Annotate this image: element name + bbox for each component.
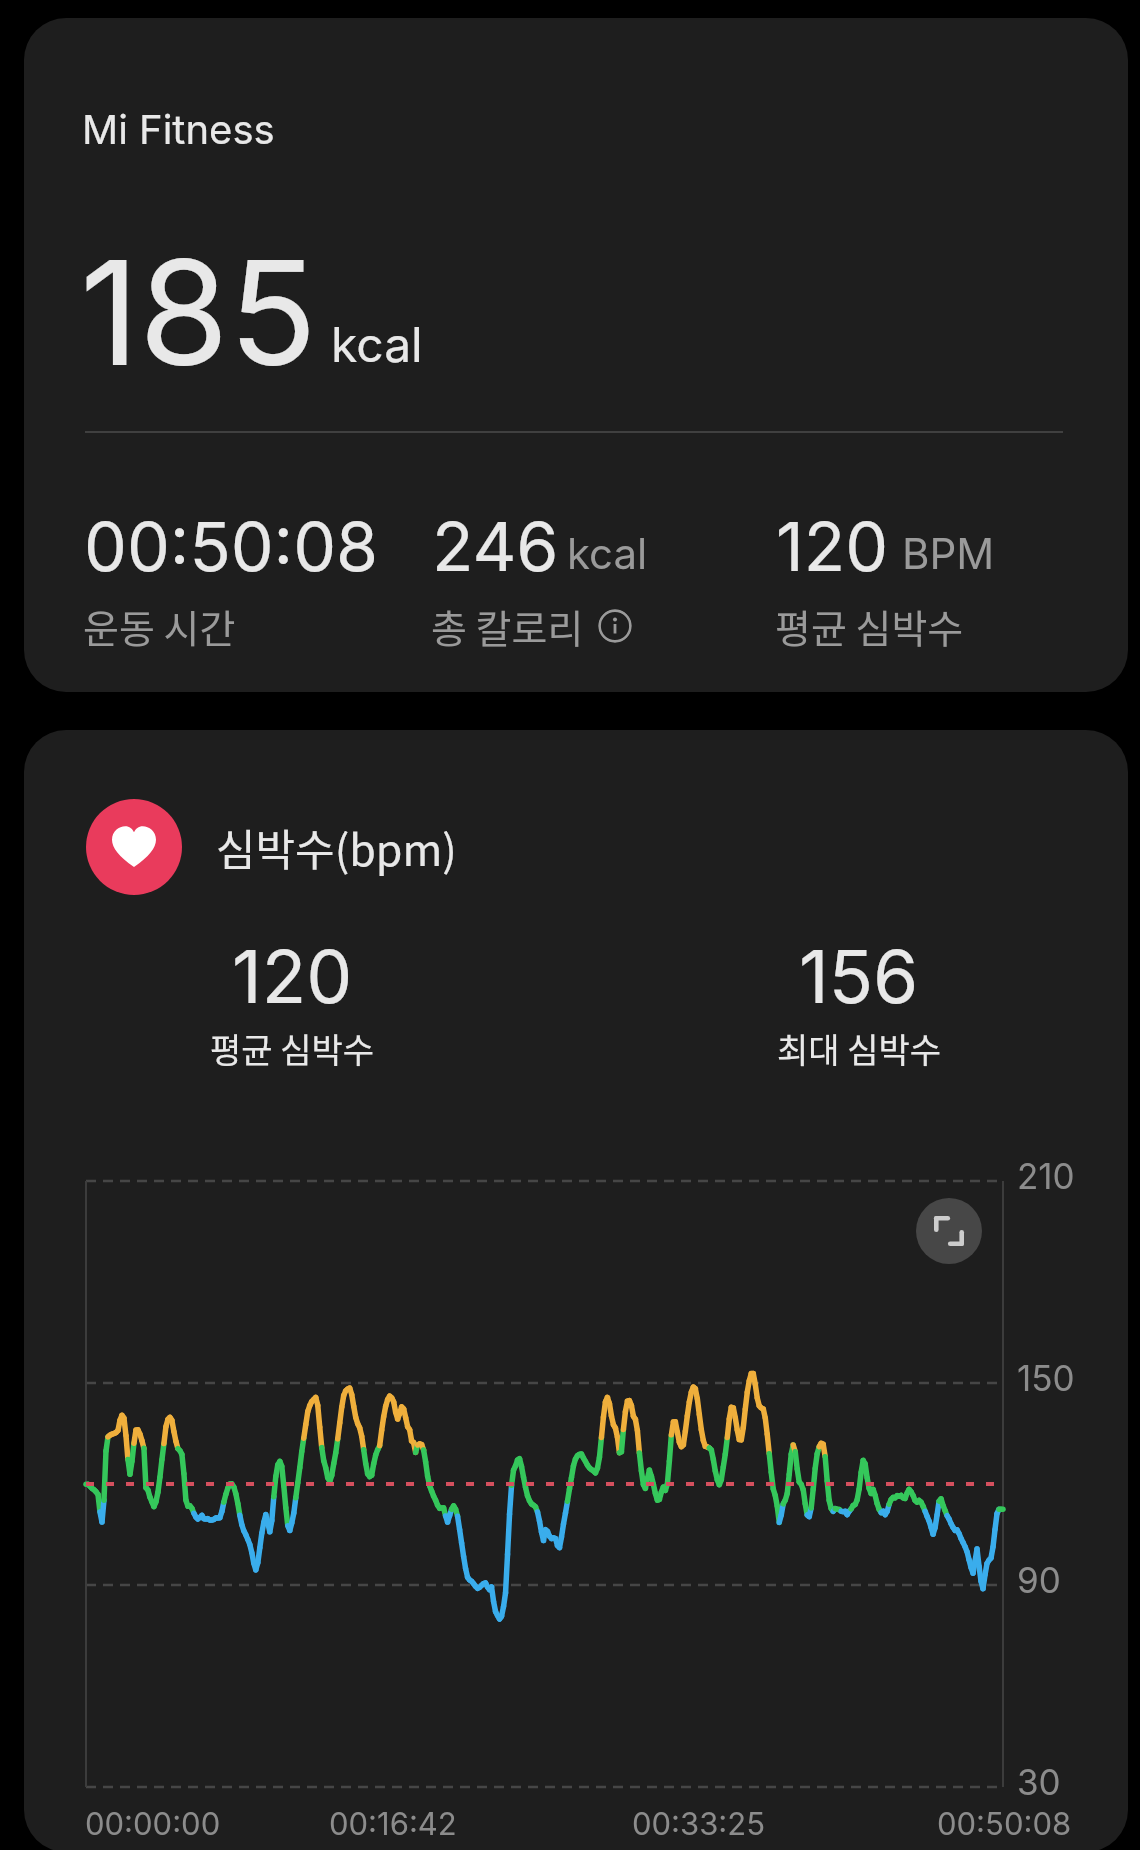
staticText: 운동 시간 [83,598,236,654]
button[interactable]: Mi Fitness [24,18,1128,692]
staticText: 210 [1017,1155,1075,1197]
staticText: 평균 심박수 [775,598,964,654]
staticText: Mi Fitness [82,105,275,153]
staticText: 00:33:25 [632,1805,766,1843]
staticText: 심박수(bpm) [216,816,457,878]
staticText: kcal [567,528,648,579]
button[interactable]: 156 [659,932,1059,1020]
staticText: 최대 심박수 [777,1024,942,1073]
staticText: 185 [80,225,317,400]
staticText: 00:50:08 [937,1805,1072,1843]
staticText: 246 [432,505,559,587]
staticText: kcal [331,315,423,373]
staticText: 150 [1017,1357,1075,1399]
staticText: 120 [776,505,889,587]
staticText: 30 [1017,1761,1061,1803]
button[interactable]: Expand chart [916,1198,982,1264]
staticText: 총 칼로리 [431,598,584,654]
staticText: 156 [799,932,919,1020]
button[interactable]: Info [598,609,632,643]
button[interactable]: 120 [92,932,492,1020]
staticText: 00:50:08 [84,505,379,587]
staticText: 120 [232,932,353,1020]
staticText: BPM [902,528,995,579]
button[interactable]: 심박수(bpm) [86,799,457,895]
staticText: 평균 심박수 [210,1024,375,1073]
staticText: 90 [1017,1559,1061,1601]
staticText: 00:00:00 [85,1805,221,1843]
staticText: 00:16:42 [329,1805,457,1843]
